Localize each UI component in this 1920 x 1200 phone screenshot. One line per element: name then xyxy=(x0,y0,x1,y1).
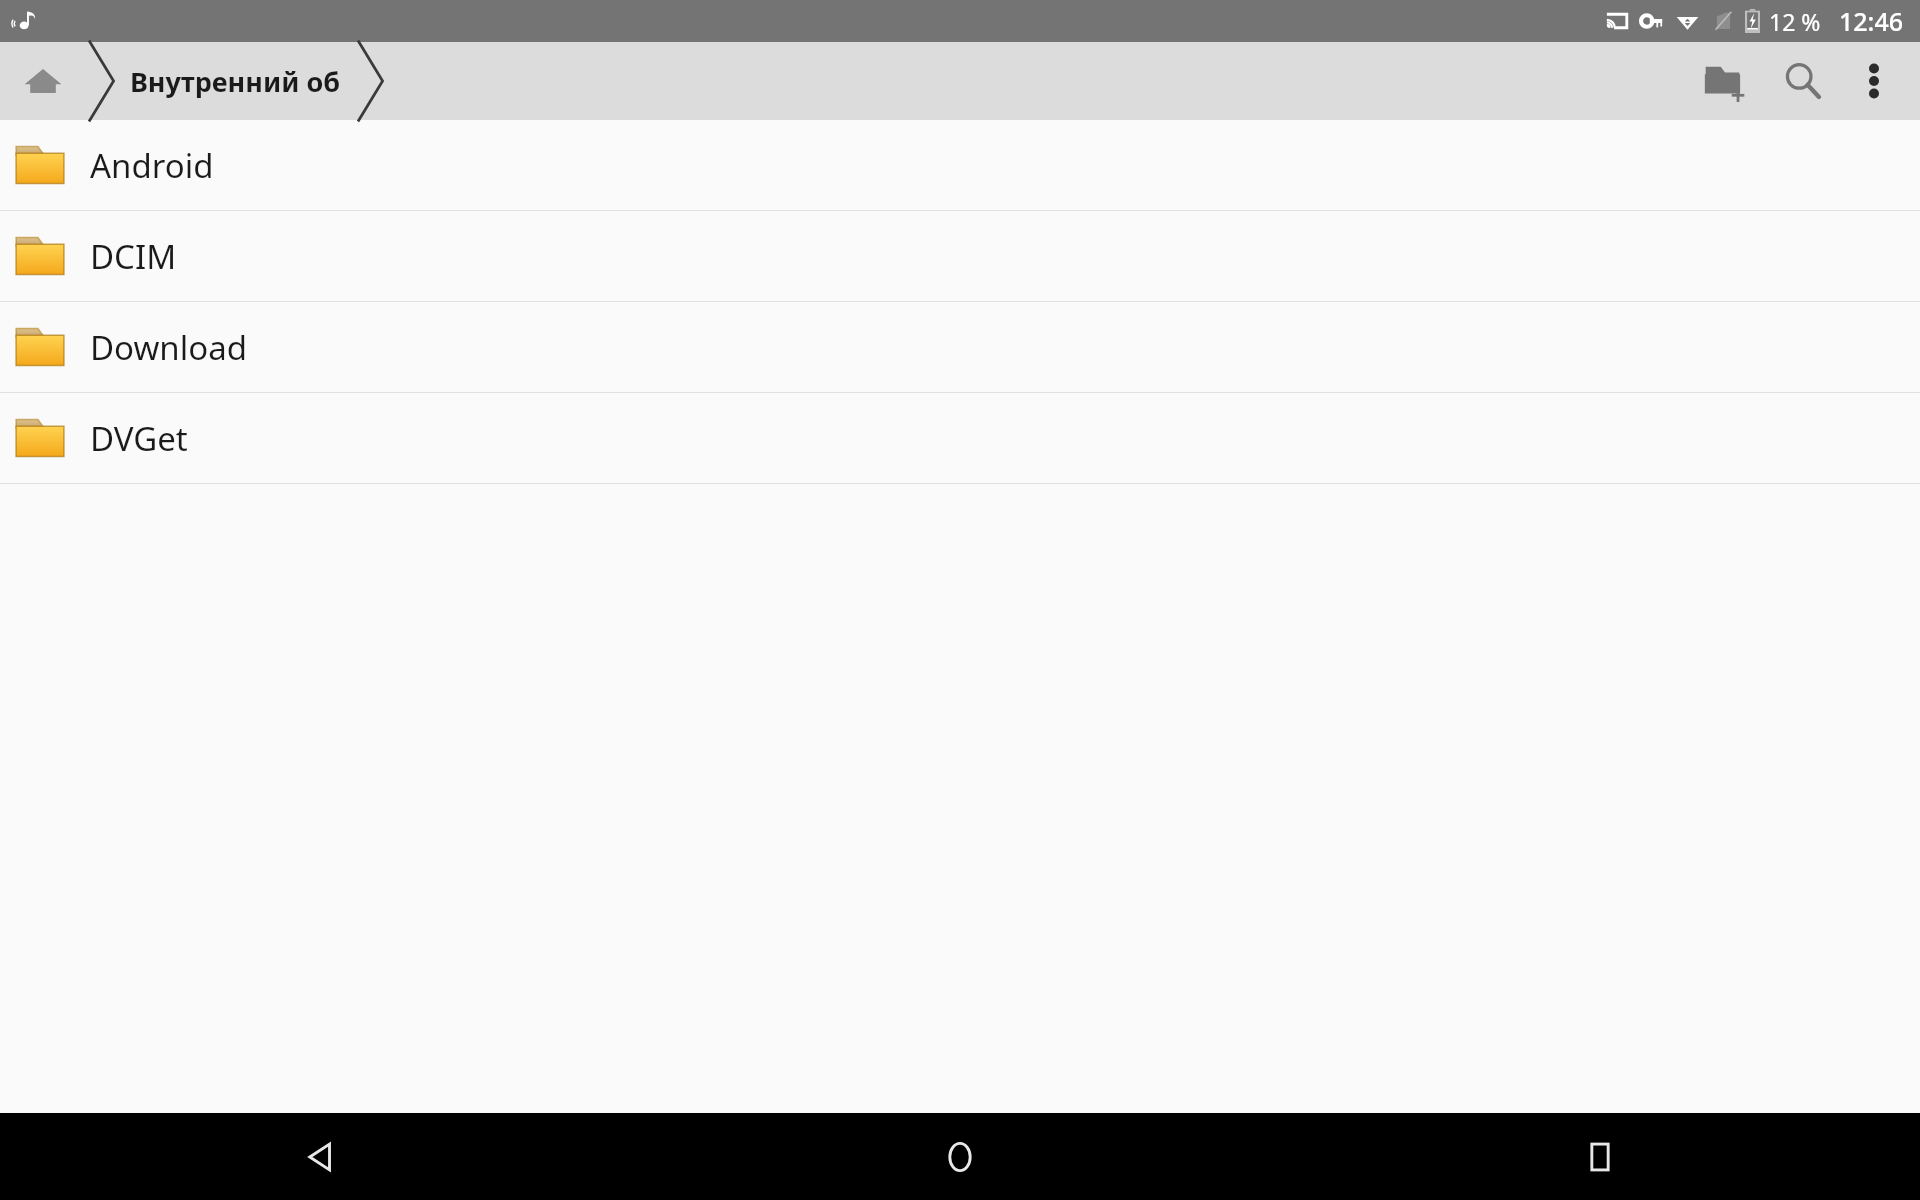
staticText: Download xyxy=(90,325,248,370)
button[interactable]: Recent apps xyxy=(1280,1113,1920,1200)
button[interactable]: New folder xyxy=(1686,42,1764,120)
staticText: 12 % xyxy=(1769,6,1821,37)
button[interactable]: Внутренний об xyxy=(116,42,355,120)
staticText: Android xyxy=(90,143,214,188)
staticText: DVGet xyxy=(90,416,188,461)
button[interactable]: DVGet xyxy=(0,393,1920,483)
button[interactable]: Search xyxy=(1764,42,1842,120)
button[interactable]: Android xyxy=(0,120,1920,210)
button[interactable]: DCIM xyxy=(0,211,1920,301)
staticText: Внутренний об xyxy=(130,63,341,100)
button[interactable]: More options xyxy=(1842,49,1906,113)
button[interactable]: Home xyxy=(0,42,86,120)
staticText: 12:46 xyxy=(1839,4,1904,38)
button[interactable]: Download xyxy=(0,302,1920,392)
staticText: DCIM xyxy=(90,234,177,279)
button[interactable]: Home xyxy=(640,1113,1280,1200)
button[interactable]: Back xyxy=(0,1113,640,1200)
